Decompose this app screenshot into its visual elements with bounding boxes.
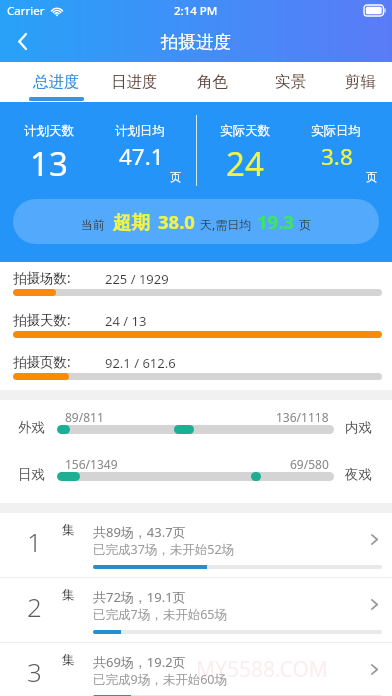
staticText: 拍摄场数:: [13, 269, 71, 287]
staticText: 3: [27, 654, 42, 689]
staticText: 天,需日均: [200, 216, 252, 232]
staticText: 156/1349: [65, 456, 118, 472]
staticText: 集: [62, 587, 75, 603]
staticText: 2:14 PM: [174, 3, 218, 19]
staticText: 225 / 1929: [105, 270, 169, 288]
staticText: 集: [62, 652, 75, 668]
staticText: 剪辑: [345, 72, 376, 92]
staticText: 共69场，19.2页: [93, 653, 186, 671]
staticText: 角色: [197, 72, 228, 92]
staticText: 页: [170, 170, 182, 184]
staticText: 页: [366, 170, 378, 184]
button[interactable]: 当前: [13, 199, 379, 244]
staticText: 拍摄进度: [161, 31, 231, 53]
staticText: 日进度: [111, 72, 158, 92]
staticText: 总进度: [33, 72, 80, 92]
staticText: 内戏: [345, 419, 372, 436]
staticText: 47.1: [119, 141, 164, 172]
staticText: 24: [226, 141, 264, 186]
staticText: 已完成7场，未开始65场: [93, 606, 227, 623]
button[interactable]: 总进度: [17, 62, 95, 102]
staticText: 已完成9场，未开始60场: [93, 671, 227, 688]
button[interactable]: 角色: [173, 62, 251, 102]
button[interactable]: Back: [0, 21, 44, 62]
staticText: 136/1118: [276, 409, 329, 425]
staticText: 共72场，19.1页: [93, 588, 186, 606]
button[interactable]: 3: [0, 643, 392, 696]
staticText: 计划日均: [115, 123, 165, 139]
staticText: 共89场，43.7页: [93, 523, 186, 541]
staticText: 24 / 13: [105, 312, 147, 330]
button[interactable]: [57, 472, 334, 481]
staticText: 实际日均: [311, 123, 361, 139]
staticText: 日戏: [18, 466, 45, 483]
button[interactable]: 2: [0, 578, 392, 643]
button[interactable]: [57, 425, 334, 434]
staticText: 实景: [275, 72, 306, 92]
staticText: 拍摄页数:: [13, 353, 71, 371]
staticText: 外戏: [18, 419, 45, 436]
staticText: 38.0: [158, 209, 195, 234]
button[interactable]: 日进度: [95, 62, 173, 102]
staticText: 13: [30, 141, 68, 186]
staticText: MY5588.COM: [196, 655, 328, 684]
staticText: 3.8: [321, 141, 353, 172]
staticText: 2: [27, 589, 42, 624]
staticText: 89/811: [65, 409, 104, 425]
staticText: 实际天数: [220, 123, 270, 139]
button[interactable]: 实景: [251, 62, 329, 102]
staticText: 已完成37场，未开始52场: [93, 541, 235, 558]
staticText: 页: [299, 217, 311, 232]
staticText: 计划天数: [24, 123, 74, 139]
button[interactable]: 剪辑: [329, 62, 392, 102]
staticText: 超期: [113, 211, 150, 234]
staticText: 夜戏: [345, 466, 372, 483]
staticText: Carrier: [7, 3, 45, 19]
staticText: 集: [62, 522, 75, 538]
staticText: 92.1 / 612.6: [105, 354, 176, 372]
staticText: 拍摄天数:: [13, 311, 71, 329]
staticText: 19.3: [257, 209, 294, 234]
staticText: 69/580: [290, 456, 329, 472]
staticText: 当前: [81, 217, 105, 232]
staticText: 1: [27, 524, 42, 559]
button[interactable]: 1: [0, 513, 392, 578]
